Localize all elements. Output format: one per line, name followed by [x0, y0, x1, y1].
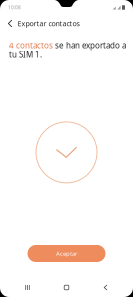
- staticText: tu SIM 1.: [9, 49, 42, 60]
- button[interactable]: Back: [4, 16, 16, 31]
- staticText: 4 contactos: [9, 40, 53, 51]
- staticText: 10:08: [8, 4, 21, 11]
- staticText: Exportar contactos: [17, 19, 79, 28]
- button[interactable]: Back: [86, 279, 125, 296]
- staticText: Aceptar: [56, 249, 77, 257]
- button[interactable]: Recent apps: [8, 279, 47, 296]
- staticText: se han exportado a: [53, 40, 126, 51]
- button[interactable]: Home: [47, 279, 86, 296]
- button[interactable]: Aceptar: [27, 245, 105, 262]
